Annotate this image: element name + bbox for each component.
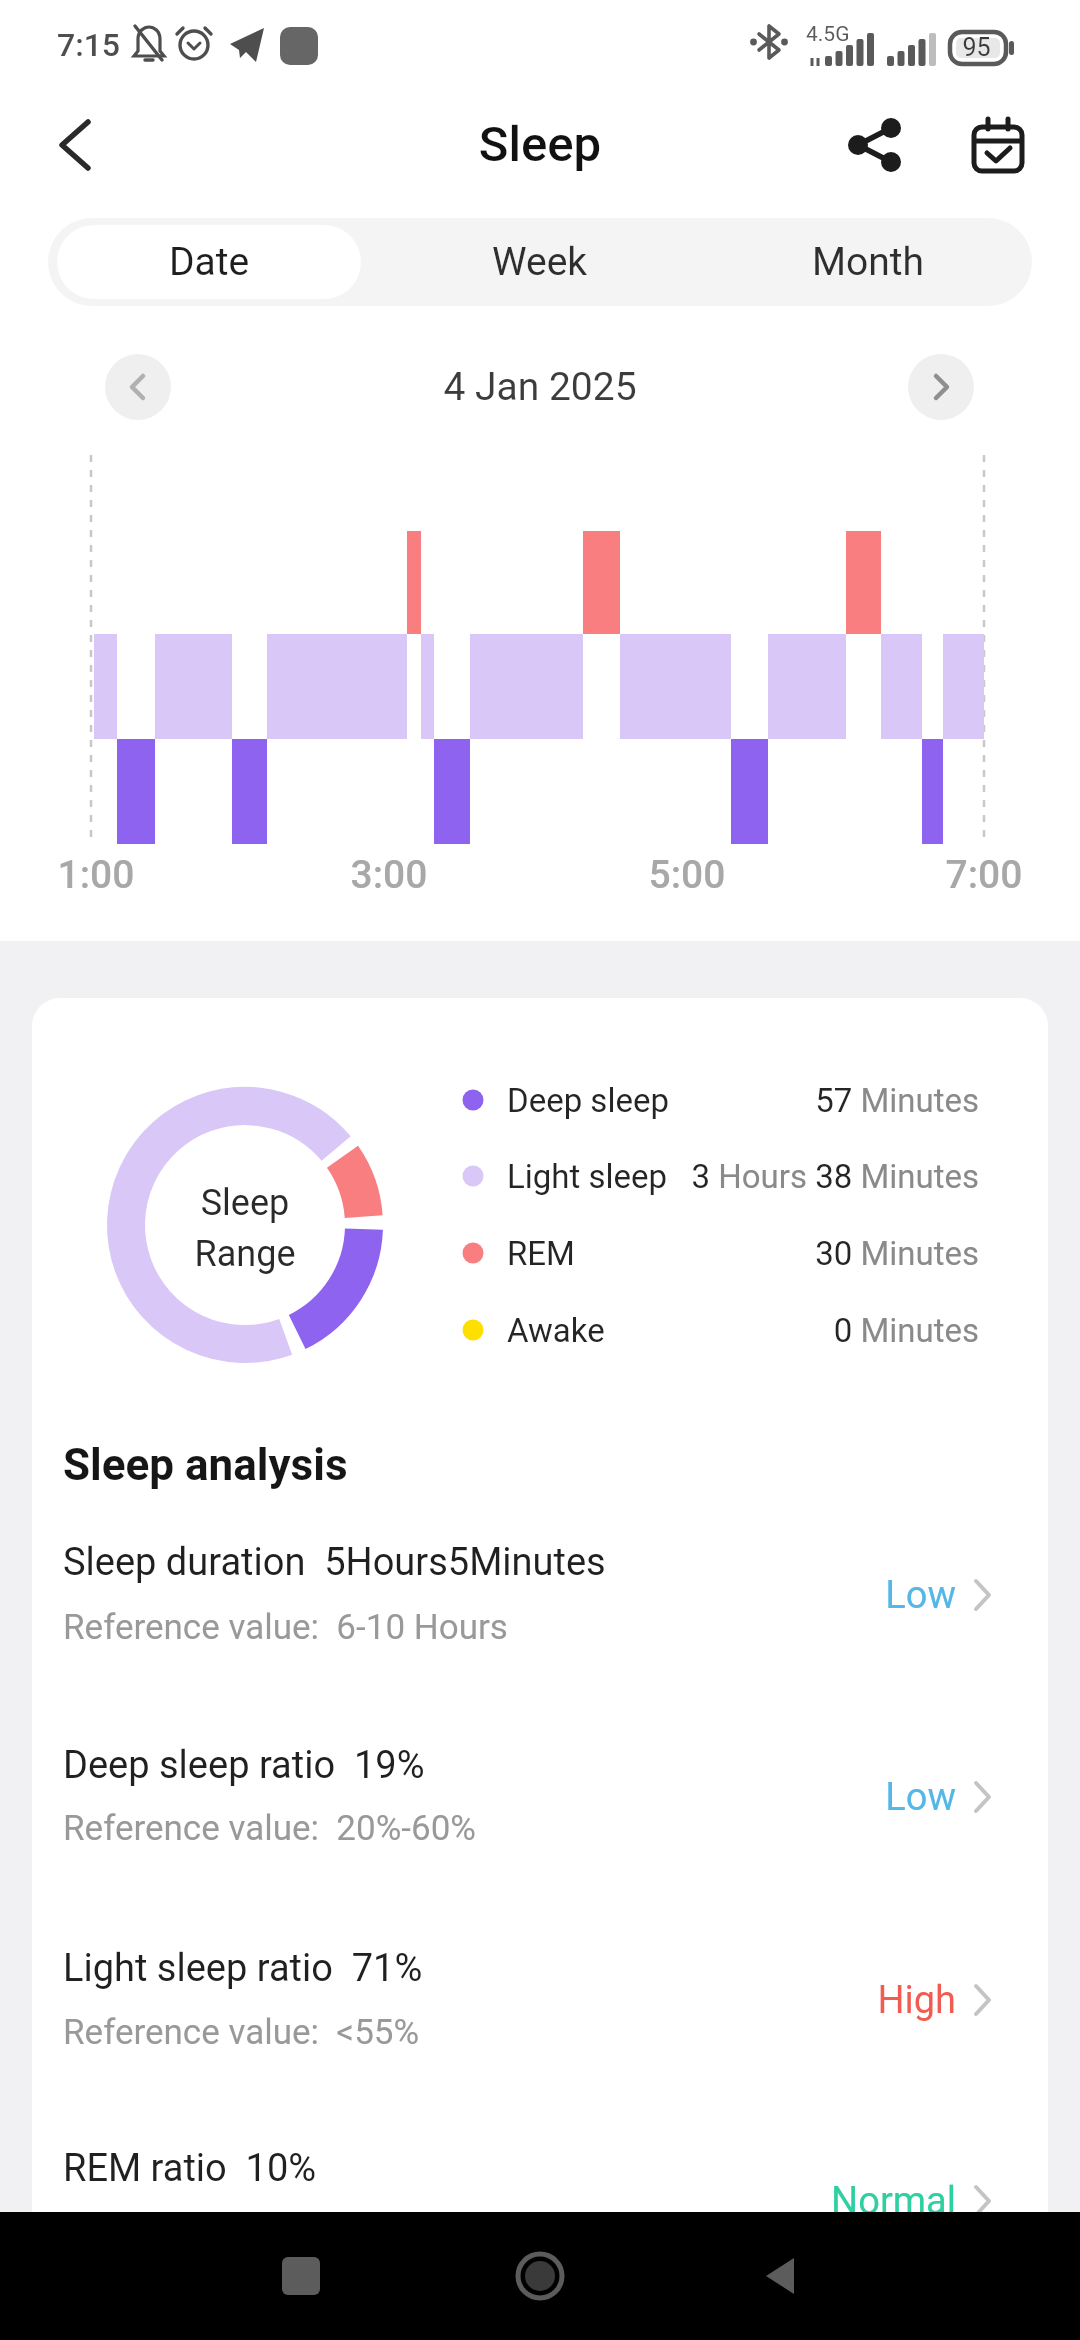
button[interactable]	[752, 2246, 812, 2306]
staticText: Deep sleep	[507, 1081, 669, 1120]
staticText: 0 Minutes	[379, 1311, 979, 1350]
staticText: Sleep	[0, 116, 1080, 173]
staticText: 3 Hours 38 Minutes	[379, 1157, 979, 1196]
button[interactable]	[32, 1888, 1048, 2068]
staticText: Reference value: 20%-60%	[63, 1808, 476, 1849]
button[interactable]	[105, 354, 171, 420]
button[interactable]	[966, 113, 1030, 177]
staticText: Light sleep	[507, 1157, 668, 1196]
staticText: Week	[492, 239, 588, 285]
staticText: 95	[955, 33, 998, 62]
button[interactable]	[32, 2088, 1048, 2268]
button[interactable]	[908, 354, 974, 420]
staticText: Reference value: <55%	[63, 2012, 420, 2053]
staticText: Deep sleep ratio 19%	[63, 1743, 425, 1788]
staticText: Awake	[507, 1311, 605, 1350]
button[interactable]: Week	[376, 225, 704, 299]
button[interactable]	[843, 113, 907, 177]
button[interactable]	[510, 2246, 570, 2306]
staticText: Low	[632, 1775, 956, 1820]
staticText: 4.5G	[806, 22, 850, 47]
button[interactable]	[271, 2246, 331, 2306]
staticText: Month	[812, 239, 925, 285]
staticText: Low	[632, 1573, 956, 1618]
staticText: 7:15	[57, 26, 121, 64]
staticText: Date	[169, 239, 250, 285]
staticText: 1:00	[21, 852, 171, 898]
staticText: 57 Minutes	[379, 1081, 979, 1120]
staticText: Light sleep ratio 71%	[63, 1946, 423, 1991]
staticText: Normal	[632, 2179, 956, 2224]
staticText: 5:00	[612, 852, 762, 898]
staticText: High	[632, 1978, 956, 2023]
staticText: Sleep analysis	[63, 1439, 348, 1491]
button[interactable]: Month	[704, 225, 1032, 299]
staticText: 4 Jan 2025	[0, 364, 1080, 410]
staticText: REM	[507, 1234, 575, 1273]
staticText: 7:00	[909, 852, 1059, 898]
button[interactable]	[40, 110, 110, 180]
staticText: Sleep Range	[145, 1182, 345, 1274]
button[interactable]	[32, 1685, 1048, 1865]
button[interactable]: Date	[57, 225, 361, 299]
staticText: 3:00	[314, 852, 464, 898]
staticText: 30 Minutes	[379, 1234, 979, 1273]
staticText: Reference value: 6-10 Hours	[63, 1607, 508, 1648]
staticText: REM ratio 10%	[63, 2146, 317, 2191]
button[interactable]	[32, 1482, 1048, 1662]
staticText: Sleep duration 5Hours5Minutes	[63, 1540, 606, 1585]
